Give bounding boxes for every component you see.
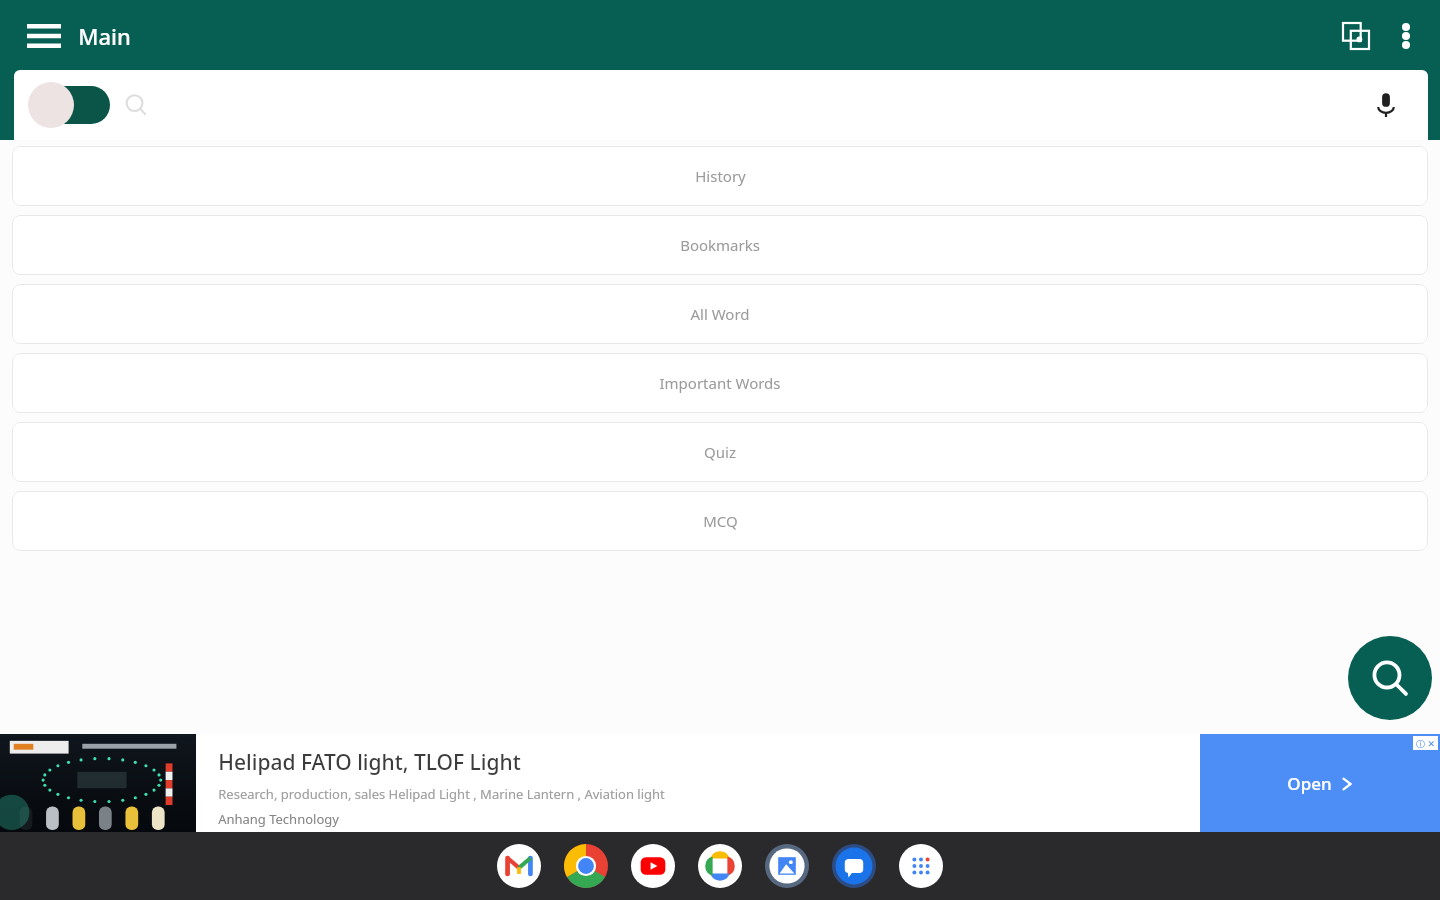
button[interactable]: Important Words (12, 353, 1428, 413)
button[interactable]: All apps (897, 842, 945, 890)
staticText: Important Words (659, 373, 781, 393)
staticText: Helipad FATO light, TLOF Light (218, 748, 521, 777)
button[interactable]: Toggle (28, 82, 110, 128)
staticText: Main (78, 21, 131, 51)
staticText: Bookmarks (680, 235, 760, 255)
staticText: Research, production, sales Helipad Ligh… (218, 785, 665, 803)
button[interactable]: Photos (696, 842, 744, 890)
staticText: MCQ (703, 511, 738, 531)
button[interactable]: YouTube (629, 842, 677, 890)
button[interactable]: Bookmarks (12, 215, 1428, 275)
staticText: Anhang Technology (218, 810, 339, 828)
staticText: ⓘ ✕ (1416, 737, 1435, 749)
button[interactable]: History (12, 146, 1428, 206)
button[interactable]: Copy (1328, 8, 1384, 64)
button[interactable]: Gallery (763, 842, 811, 890)
staticText: Open (1287, 772, 1332, 795)
staticText: Quiz (704, 442, 736, 462)
button[interactable]: Open (1200, 734, 1440, 832)
button[interactable]: Search (1348, 636, 1432, 720)
button[interactable]: Open navigation menu (18, 10, 70, 62)
button[interactable]: Gmail (495, 842, 543, 890)
button[interactable]: Messages (830, 842, 878, 890)
button[interactable]: Toggle (14, 70, 1428, 140)
button[interactable]: More options (1384, 8, 1428, 64)
button[interactable]: MCQ (12, 491, 1428, 551)
staticText: All Word (690, 304, 750, 324)
button[interactable]: Voice search (1366, 85, 1406, 125)
button[interactable]: Close ad (1416, 737, 1435, 749)
button[interactable]: Chrome (562, 842, 610, 890)
staticText: History (695, 166, 746, 186)
button[interactable]: Quiz (12, 422, 1428, 482)
button[interactable]: All Word (12, 284, 1428, 344)
